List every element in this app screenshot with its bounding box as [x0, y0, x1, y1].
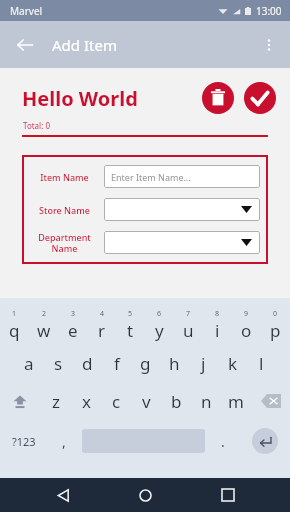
staticText: t [127, 319, 134, 342]
button[interactable]: 2 [29, 306, 58, 344]
staticText: p [270, 319, 281, 342]
staticText: d [82, 352, 93, 375]
button[interactable]: z [40, 382, 71, 420]
button[interactable]: . [207, 420, 239, 462]
button[interactable]: 1 [0, 306, 29, 344]
button[interactable]: Recent apps [208, 478, 248, 512]
button[interactable]: Shift [0, 382, 40, 420]
button[interactable]: 0 [261, 306, 290, 344]
staticText: a [24, 352, 34, 375]
button[interactable]: g [131, 344, 160, 382]
staticText: b [171, 390, 182, 413]
staticText: 9 [244, 309, 249, 319]
button[interactable]: n [191, 382, 221, 420]
staticText: m [228, 390, 244, 413]
staticText: . [221, 432, 225, 451]
staticText: f [114, 352, 120, 375]
staticText: x [82, 390, 91, 413]
staticText: 13:00 [256, 4, 282, 18]
button[interactable]: ?123 [0, 420, 48, 462]
staticText: z [52, 390, 60, 413]
staticText: y [155, 319, 164, 342]
button[interactable]: Backspace [251, 382, 290, 420]
button[interactable]: 4 [87, 306, 116, 344]
staticText: h [169, 352, 180, 375]
staticText: , [62, 432, 66, 451]
staticText: Total: 0 [23, 120, 50, 131]
button[interactable]: s [44, 344, 73, 382]
staticText: Store Name [39, 204, 90, 216]
staticText: 5 [128, 309, 133, 319]
button[interactable]: Save [244, 82, 276, 114]
button[interactable]: x [71, 382, 101, 420]
button[interactable]: Back [10, 30, 40, 60]
button[interactable]: Delete [202, 82, 234, 114]
staticText: Enter Item Name... [111, 171, 191, 183]
button[interactable]: 9 [232, 306, 261, 344]
staticText: n [201, 390, 212, 413]
staticText: 7 [186, 309, 191, 319]
staticText: 6 [157, 309, 162, 319]
staticText: w [37, 319, 51, 342]
button[interactable]: m [221, 382, 251, 420]
button[interactable]: l [247, 344, 276, 382]
staticText: v [142, 390, 151, 413]
button[interactable]: h [160, 344, 189, 382]
button[interactable]: 3 [58, 306, 87, 344]
staticText: 2 [42, 309, 47, 319]
staticText: e [68, 319, 78, 342]
button[interactable]: Enter Item Name... [104, 165, 260, 188]
button[interactable]: d [73, 344, 102, 382]
button[interactable]: k [218, 344, 247, 382]
staticText: i [215, 319, 220, 342]
staticText: Add Item [52, 35, 117, 55]
button[interactable]: 7 [174, 306, 203, 344]
button[interactable]: More options [254, 30, 284, 60]
button[interactable]: 6 [145, 306, 174, 344]
button[interactable]: c [101, 382, 131, 420]
staticText: c [112, 390, 121, 413]
button[interactable]: b [161, 382, 191, 420]
staticText: 1 [12, 309, 17, 319]
button[interactable]: , [48, 420, 80, 462]
button[interactable]: Enter [239, 420, 290, 462]
staticText: j [201, 352, 206, 375]
button[interactable]: 5 [116, 306, 145, 344]
button[interactable]: j [189, 344, 218, 382]
staticText: Item Name [40, 171, 89, 183]
staticText: Marvel [10, 4, 43, 18]
staticText: 4 [100, 309, 105, 319]
staticText: ?123 [12, 434, 36, 449]
button[interactable]: 8 [203, 306, 232, 344]
staticText: o [241, 319, 252, 342]
staticText: Hello World [22, 85, 202, 112]
staticText: Department Name [38, 231, 91, 254]
button[interactable]: Department Name [104, 231, 260, 254]
button[interactable]: a [14, 344, 44, 382]
staticText: 3 [71, 309, 76, 319]
staticText: l [259, 352, 264, 375]
button[interactable]: Store Name [104, 198, 260, 221]
button[interactable]: Back [43, 478, 83, 512]
staticText: u [183, 319, 194, 342]
staticText: 0 [273, 309, 278, 319]
staticText: q [9, 319, 20, 342]
staticText: k [228, 352, 238, 375]
button[interactable]: v [131, 382, 161, 420]
button[interactable]: f [102, 344, 131, 382]
staticText: s [54, 352, 63, 375]
staticText: g [140, 352, 151, 375]
button[interactable]: Home [125, 478, 165, 512]
staticText: r [98, 319, 106, 342]
staticText: 8 [215, 309, 220, 319]
